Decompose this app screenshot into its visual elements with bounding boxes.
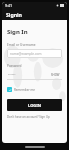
staticText: Signin — [6, 11, 22, 18]
button[interactable]: name@example.com — [7, 49, 62, 58]
staticText: Password — [7, 64, 22, 68]
staticText: name@example.com — [10, 52, 42, 56]
staticText: SHOW — [51, 73, 60, 77]
staticText: •••••• — [8, 72, 16, 77]
staticText: 9:41 — [5, 3, 13, 8]
staticText: Sign In — [7, 28, 28, 36]
button[interactable]: Remember me — [7, 86, 35, 93]
staticText: LOGIN — [28, 103, 42, 108]
button[interactable]: •••••• — [7, 70, 62, 79]
staticText: Email or Username — [7, 43, 36, 47]
staticText: Don't have an account? Sign Up — [7, 115, 50, 119]
button[interactable]: LOGIN — [7, 99, 62, 111]
staticText: Remember me — [14, 88, 35, 92]
button[interactable]: SHOW — [50, 72, 61, 78]
button[interactable]: Don't have an account? Sign Up — [7, 115, 62, 119]
